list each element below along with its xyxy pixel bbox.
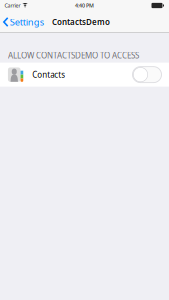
staticText: Contacts (32, 69, 65, 80)
staticText: Settings (10, 16, 44, 28)
button[interactable]: Settings (0, 14, 47, 30)
button[interactable]: Contacts (0, 63, 169, 87)
staticText: ContactsDemo (52, 17, 110, 27)
staticText: ALLOW CONTACTSDEMO TO ACCESS (8, 50, 139, 61)
staticText: 4:40 PM (75, 2, 94, 9)
staticText: Carrier (4, 2, 20, 9)
